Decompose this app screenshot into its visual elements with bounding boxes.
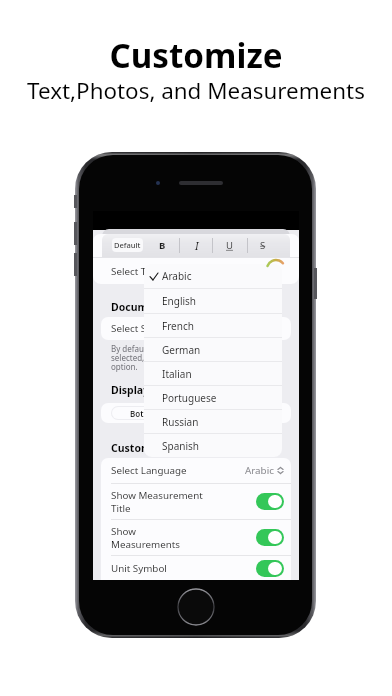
staticText: Display	[111, 383, 150, 397]
staticText: Portuguese	[162, 391, 217, 405]
staticText: I	[195, 239, 199, 253]
staticText: Both	[130, 408, 149, 419]
button[interactable]: Select Language	[111, 458, 284, 483]
staticText: Document	[111, 300, 166, 314]
staticText: S	[260, 239, 266, 252]
button[interactable]: French	[144, 314, 282, 337]
staticText: German	[162, 343, 201, 357]
staticText: U	[226, 239, 233, 252]
button[interactable]: German	[144, 338, 282, 361]
staticText: Default	[114, 240, 141, 250]
button[interactable]: Show Measurements	[111, 520, 284, 555]
button[interactable]: Unit Symbol	[111, 556, 284, 580]
button[interactable]: Arabic	[144, 264, 282, 288]
button[interactable]: S	[252, 234, 274, 257]
staticText: By default, the settings will be applied…	[111, 343, 278, 373]
staticText: French	[162, 319, 194, 333]
staticText: B	[159, 239, 166, 252]
staticText: Customize	[109, 33, 283, 78]
button[interactable]: Russian	[144, 410, 282, 433]
staticText: Arabic	[162, 269, 192, 283]
button[interactable]: Show Measurement Title	[111, 484, 284, 519]
staticText: Arabic	[245, 464, 274, 477]
staticText: Show Measurement Title	[111, 489, 256, 514]
staticText: Text,Photos, and Measurements	[27, 75, 365, 106]
staticText: Show Measurements	[111, 525, 256, 550]
button[interactable]: English	[144, 289, 282, 313]
button[interactable]: Select Text Font	[93, 258, 299, 284]
staticText: Select Language	[111, 464, 245, 477]
staticText: Russian	[162, 415, 199, 429]
button[interactable]: Default	[112, 238, 143, 252]
staticText: Spanish	[162, 439, 199, 453]
staticText: Select Scope	[111, 322, 169, 335]
button[interactable]: Photo	[225, 407, 280, 419]
button[interactable]: Portuguese	[144, 386, 282, 409]
staticText: Photo	[241, 408, 265, 419]
button[interactable]: Italian	[144, 362, 282, 385]
staticText: Customize	[111, 441, 166, 455]
staticText: English	[162, 294, 197, 308]
staticText: Unit Symbol	[111, 562, 256, 575]
button[interactable]: I	[186, 234, 208, 257]
staticText: Text	[187, 408, 204, 419]
button[interactable]: Text	[168, 407, 223, 419]
staticText: Select Text Font	[111, 265, 183, 278]
staticText: Italian	[162, 367, 192, 381]
button[interactable]: Both	[112, 407, 166, 419]
button[interactable]: Spanish	[144, 434, 282, 457]
button[interactable]: U	[218, 234, 240, 257]
button[interactable]: Select Scope	[101, 317, 291, 340]
button[interactable]: B	[151, 234, 173, 257]
